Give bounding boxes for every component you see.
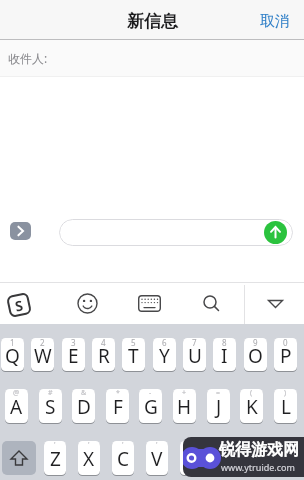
staticText: M bbox=[250, 446, 268, 472]
button[interactable]: ' bbox=[44, 441, 66, 475]
staticText: S bbox=[13, 295, 25, 316]
staticText: W bbox=[34, 343, 52, 369]
staticText: V bbox=[151, 446, 163, 472]
staticText: C bbox=[117, 446, 130, 472]
staticText: # bbox=[48, 389, 53, 398]
button[interactable]: 取消 bbox=[260, 12, 290, 31]
button[interactable]: ) bbox=[274, 389, 297, 423]
staticText: 收件人: bbox=[8, 50, 48, 66]
button[interactable] bbox=[2, 441, 36, 475]
staticText: = bbox=[216, 389, 221, 398]
staticText: I bbox=[221, 343, 228, 369]
button[interactable]: = bbox=[207, 389, 230, 423]
button[interactable]: 4 bbox=[92, 338, 115, 371]
staticText: O bbox=[248, 343, 263, 369]
button[interactable] bbox=[10, 222, 31, 240]
staticText: 6 bbox=[162, 338, 167, 348]
button[interactable]: @ bbox=[5, 389, 28, 423]
button[interactable]: 收件人: bbox=[0, 40, 304, 76]
staticText: 8 bbox=[222, 338, 227, 348]
staticText: K bbox=[246, 394, 258, 420]
button[interactable]: ' bbox=[146, 441, 168, 475]
staticText: 4 bbox=[101, 338, 106, 348]
button[interactable] bbox=[264, 221, 287, 244]
button[interactable]: 3 bbox=[62, 338, 85, 371]
staticText: ' bbox=[156, 441, 158, 450]
staticText: 2 bbox=[40, 338, 45, 348]
staticText: 新信息 bbox=[127, 11, 178, 32]
button[interactable]: ' bbox=[180, 441, 202, 475]
button[interactable]: * bbox=[106, 389, 129, 423]
button[interactable]: 6 bbox=[153, 338, 176, 371]
staticText: X bbox=[83, 446, 95, 472]
button[interactable]: 8 bbox=[213, 338, 236, 371]
button[interactable]: # bbox=[39, 389, 62, 423]
button[interactable]: - bbox=[139, 389, 162, 423]
staticText: J bbox=[216, 394, 222, 420]
staticText: T bbox=[128, 343, 139, 369]
button[interactable] bbox=[138, 295, 161, 312]
button[interactable] bbox=[203, 295, 221, 313]
staticText: - bbox=[149, 389, 152, 398]
staticText: 1 bbox=[10, 338, 15, 348]
staticText: D bbox=[77, 394, 91, 420]
staticText: B bbox=[185, 446, 198, 472]
staticText: ' bbox=[258, 441, 260, 450]
button[interactable]: & bbox=[72, 389, 95, 423]
staticText: Q bbox=[5, 343, 20, 369]
staticText: www.ytruide.com bbox=[221, 461, 295, 473]
button[interactable]: S bbox=[6, 292, 32, 318]
button[interactable]: ' bbox=[112, 441, 134, 475]
staticText: 7 bbox=[192, 338, 197, 348]
staticText: N bbox=[218, 446, 233, 472]
staticText: L bbox=[281, 394, 291, 420]
staticText: 0 bbox=[283, 338, 288, 348]
staticText: A bbox=[10, 394, 23, 420]
staticText: Y bbox=[159, 343, 170, 369]
button[interactable]: ' bbox=[248, 441, 270, 475]
staticText: R bbox=[98, 343, 110, 369]
staticText: 9 bbox=[253, 338, 258, 348]
staticText: ) bbox=[284, 389, 287, 398]
button[interactable] bbox=[267, 299, 284, 309]
staticText: ' bbox=[122, 441, 124, 450]
staticText: 锐得游戏网 bbox=[219, 440, 299, 460]
button[interactable]: + bbox=[173, 389, 196, 423]
button[interactable]: ' bbox=[78, 441, 100, 475]
button[interactable]: 1 bbox=[1, 338, 24, 371]
staticText: ' bbox=[190, 441, 192, 450]
staticText: ' bbox=[224, 441, 226, 450]
button[interactable]: 0 bbox=[274, 338, 297, 371]
staticText: & bbox=[81, 389, 87, 398]
button[interactable]: ' bbox=[214, 441, 236, 475]
staticText: P bbox=[280, 343, 292, 369]
staticText: ' bbox=[54, 441, 56, 450]
staticText: 5 bbox=[131, 338, 136, 348]
staticText: U bbox=[188, 343, 202, 369]
staticText: S bbox=[45, 394, 56, 420]
staticText: H bbox=[177, 394, 192, 420]
button[interactable]: 9 bbox=[244, 338, 267, 371]
staticText: E bbox=[68, 343, 79, 369]
button[interactable] bbox=[77, 293, 98, 314]
button[interactable]: 7 bbox=[183, 338, 206, 371]
staticText: F bbox=[113, 394, 123, 420]
button[interactable]: 2 bbox=[31, 338, 54, 371]
staticText: 3 bbox=[71, 338, 76, 348]
staticText: 取消 bbox=[260, 12, 290, 31]
staticText: ( bbox=[250, 389, 253, 398]
button[interactable]: 5 bbox=[122, 338, 145, 371]
staticText: ' bbox=[88, 441, 90, 450]
button[interactable]: ( bbox=[240, 389, 263, 423]
staticText: @ bbox=[13, 389, 20, 398]
staticText: + bbox=[182, 389, 187, 398]
staticText: G bbox=[144, 394, 158, 420]
staticText: Z bbox=[50, 446, 61, 472]
staticText: * bbox=[116, 389, 120, 398]
